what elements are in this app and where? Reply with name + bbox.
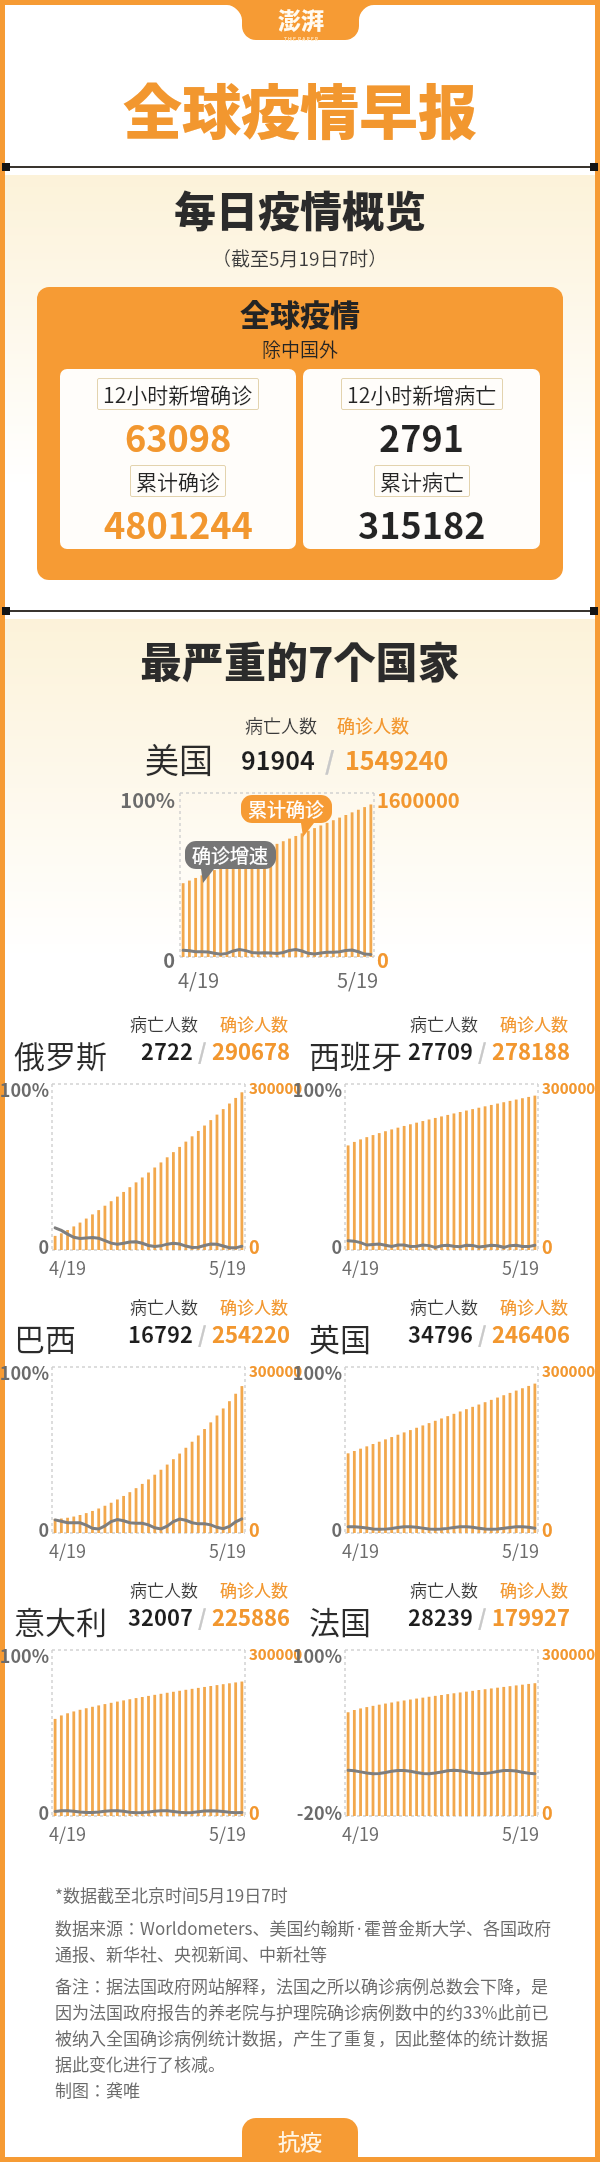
staticText: 5/19 [209,1254,247,1280]
staticText: 5/19 [337,965,379,994]
staticText: 1600000 [377,785,460,814]
staticText: 0 [249,1233,260,1259]
staticText: 4/19 [49,1254,87,1280]
staticText: *数据截至北京时间5月19日7时 [55,1882,288,1907]
staticText: 100% [287,1076,342,1102]
staticText: 278188 [492,1034,570,1066]
staticText: 确诊增速 [192,841,269,869]
staticText: 4801244 [104,497,253,549]
staticText: 4/19 [342,1820,380,1846]
staticText: 2722 [141,1034,193,1066]
staticText: 确诊人数 [500,1577,568,1602]
staticText: 5/19 [502,1820,540,1846]
staticText: 28239 [408,1600,473,1632]
staticText: 16792 [128,1317,193,1349]
staticText: 确诊人数 [337,712,409,738]
staticText: 确诊人数 [500,1294,568,1319]
staticText: 63098 [125,410,232,462]
staticText: 179927 [492,1600,570,1632]
staticText: 抗疫 [278,2124,323,2156]
staticText: / [198,1600,207,1632]
staticText: 300000 [542,1077,596,1099]
staticText: 5/19 [502,1254,540,1280]
staticText: 法国 [309,1598,371,1643]
staticText: 5/19 [209,1820,247,1846]
staticText: 每日疫情概览 [174,178,427,239]
staticText: 数据来源：Worldometers、美国约翰斯·霍普金斯大学、各国政府通报、新华… [55,1915,553,1966]
staticText: 246406 [492,1317,570,1349]
staticText: 100% [0,1359,49,1385]
button[interactable]: 12小时新增确诊 [60,369,296,549]
staticText: 300000 [249,1077,303,1099]
staticText: -20% [287,1799,342,1825]
staticText: 确诊人数 [220,1011,288,1036]
staticText: T H E P A P E R [284,35,319,42]
button[interactable]: The Paper logo [242,0,359,40]
staticText: 0 [0,1799,49,1825]
staticText: 1549240 [345,741,449,777]
staticText: / [478,1600,487,1632]
button[interactable]: 12小时新增病亡 [303,369,540,549]
staticText: 俄罗斯 [14,1032,107,1077]
staticText: 病亡人数 [130,1577,198,1602]
staticText: 290678 [212,1034,290,1066]
staticText: 病亡人数 [410,1294,478,1319]
staticText: 病亡人数 [130,1294,198,1319]
staticText: 除中国外 [262,335,339,363]
staticText: 病亡人数 [130,1011,198,1036]
staticText: 315182 [358,497,486,549]
staticText: 0 [377,945,389,974]
staticText: 254220 [212,1317,290,1349]
staticText: 100% [0,1076,49,1102]
staticText: 300000 [542,1360,596,1382]
staticText: 0 [117,945,175,974]
staticText: 0 [542,1516,553,1542]
staticText: / [478,1317,487,1349]
staticText: 225886 [212,1600,290,1632]
staticText: 全球疫情 [240,291,360,334]
staticText: 300000 [249,1643,303,1665]
staticText: 0 [249,1799,260,1825]
staticText: 32007 [128,1600,193,1632]
staticText: 确诊人数 [220,1294,288,1319]
staticText: 0 [0,1233,49,1259]
staticText: 12小时新增病亡 [347,379,497,409]
staticText: 100% [0,1642,49,1668]
staticText: / [198,1034,207,1066]
staticText: 病亡人数 [410,1577,478,1602]
staticText: 0 [542,1233,553,1259]
staticText: 91904 [241,741,315,777]
button[interactable]: 抗疫 [242,2118,358,2162]
staticText: 病亡人数 [410,1011,478,1036]
staticText: （截至5月19日7时） [212,244,388,272]
staticText: 巴西 [14,1315,76,1360]
staticText: 确诊人数 [500,1011,568,1036]
staticText: 5/19 [502,1537,540,1563]
staticText: 美国 [145,734,213,783]
staticText: 0 [0,1516,49,1542]
staticText: 英国 [309,1315,371,1360]
staticText: / [198,1317,207,1349]
staticText: 最严重的7个国家 [140,629,460,690]
staticText: / [478,1034,487,1066]
staticText: 制图：龚唯 [55,2077,140,2102]
staticText: 全球疫情早报 [123,66,478,151]
staticText: 4/19 [342,1254,380,1280]
staticText: 12小时新增确诊 [103,379,253,409]
staticText: 意大利 [14,1598,107,1643]
staticText: 300000 [542,1643,596,1665]
staticText: 病亡人数 [245,712,317,738]
staticText: 4/19 [342,1537,380,1563]
staticText: 备注：据法国政府网站解释，法国之所以确诊病例总数会下降，是因为法国政府报告的养老… [55,1973,553,2076]
staticText: 澎湃 [278,2,324,35]
staticText: / [325,741,335,777]
staticText: 西班牙 [309,1032,402,1077]
staticText: 300000 [249,1360,303,1382]
staticText: 100% [117,785,175,814]
staticText: 0 [542,1799,553,1825]
staticText: 0 [287,1233,342,1259]
staticText: 累计病亡 [380,466,464,496]
staticText: 100% [287,1359,342,1385]
staticText: 4/19 [49,1820,87,1846]
staticText: 100% [287,1642,342,1668]
